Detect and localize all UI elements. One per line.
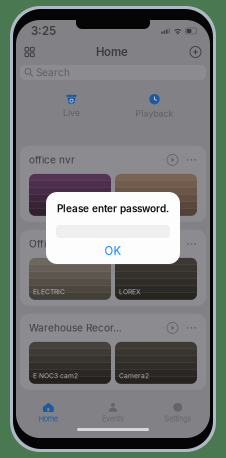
button[interactable]: Settings bbox=[145, 402, 210, 424]
button[interactable]: Home bbox=[16, 402, 81, 424]
button[interactable]: Camera2 bbox=[115, 342, 197, 384]
staticText: E NOC3 cam2 bbox=[33, 372, 78, 380]
button[interactable]: LOREX bbox=[115, 258, 197, 300]
staticText: 3:25 bbox=[31, 24, 56, 38]
button[interactable]: More options bbox=[186, 322, 197, 333]
button[interactable]: Events bbox=[81, 402, 145, 424]
staticText: Home bbox=[96, 45, 128, 59]
staticText: Live bbox=[63, 108, 80, 118]
button[interactable]: E NOC3 cam2 bbox=[29, 342, 111, 384]
button[interactable]: Play group bbox=[167, 322, 178, 333]
staticText: Search bbox=[36, 66, 70, 79]
button[interactable]: OK bbox=[46, 238, 180, 264]
button[interactable]: Layout bbox=[18, 43, 41, 61]
staticText: Settings bbox=[164, 414, 191, 423]
button[interactable]: Playback bbox=[113, 94, 196, 119]
button[interactable]: Add device bbox=[183, 42, 208, 61]
button[interactable]: More options bbox=[186, 238, 197, 249]
button[interactable] bbox=[115, 174, 197, 216]
staticText: ELECTRIC bbox=[33, 288, 65, 296]
staticText: Events bbox=[102, 414, 124, 423]
staticText: LOREX bbox=[119, 288, 141, 296]
button[interactable]: More options bbox=[186, 154, 197, 165]
button[interactable]: Live bbox=[30, 95, 113, 118]
button[interactable] bbox=[29, 174, 111, 216]
staticText: Home bbox=[39, 414, 58, 423]
staticText: Office… bbox=[29, 238, 67, 250]
staticText: Playback bbox=[135, 108, 173, 119]
button[interactable]: Search bbox=[20, 65, 206, 80]
staticText: Warehouse Recor… bbox=[29, 322, 122, 334]
button[interactable]: ELECTRIC bbox=[29, 258, 111, 300]
button[interactable]: Play group bbox=[167, 154, 178, 165]
staticText: office nvr bbox=[29, 154, 75, 166]
staticText: Camera2 bbox=[119, 372, 149, 380]
staticText: OK bbox=[104, 244, 121, 258]
staticText: Please enter password. bbox=[57, 202, 169, 215]
